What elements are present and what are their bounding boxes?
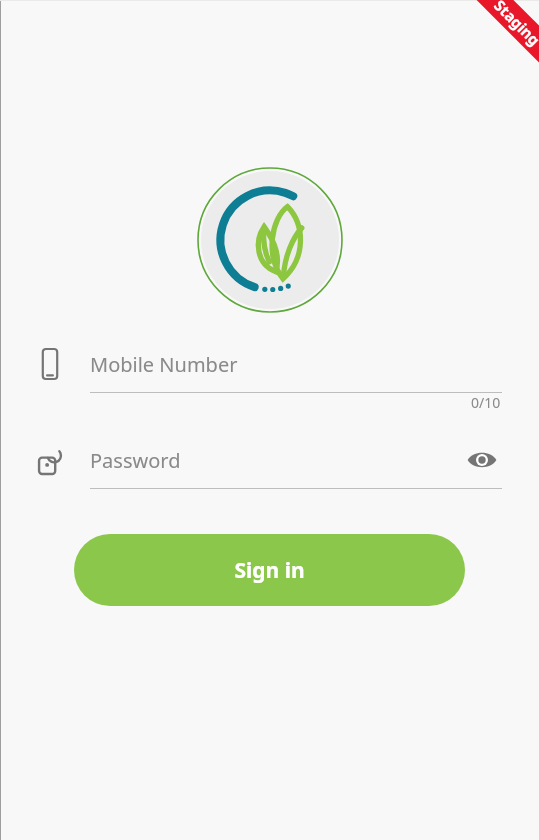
button[interactable]: Mobile Number	[30, 336, 502, 392]
button[interactable]: Password	[30, 432, 502, 488]
staticText: Staging	[490, 0, 539, 49]
button[interactable]: Show password	[462, 440, 502, 480]
staticText: 0/10	[471, 393, 501, 412]
button[interactable]: Sign in	[74, 534, 465, 606]
staticText: Password	[90, 447, 462, 474]
staticText: Mobile Number	[90, 351, 502, 378]
staticText: Sign in	[234, 556, 305, 585]
